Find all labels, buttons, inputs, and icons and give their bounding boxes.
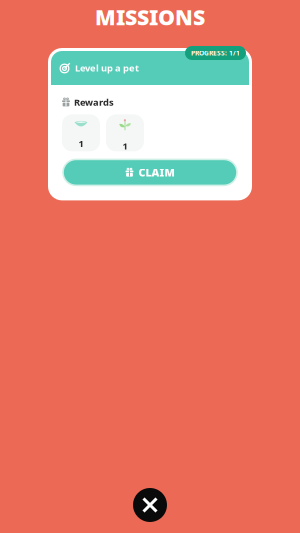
- staticText: PROGRESS: 1/1: [191, 49, 240, 57]
- staticText: CLAIM: [138, 165, 174, 179]
- staticText: Rewards: [74, 96, 114, 108]
- staticText: Level up a pet: [75, 62, 139, 74]
- button[interactable]: Close: [128, 483, 172, 527]
- staticText: 1: [122, 140, 127, 152]
- staticText: MISSIONS: [95, 3, 205, 31]
- button[interactable]: CLAIM: [63, 159, 237, 185]
- staticText: 1: [78, 137, 83, 150]
